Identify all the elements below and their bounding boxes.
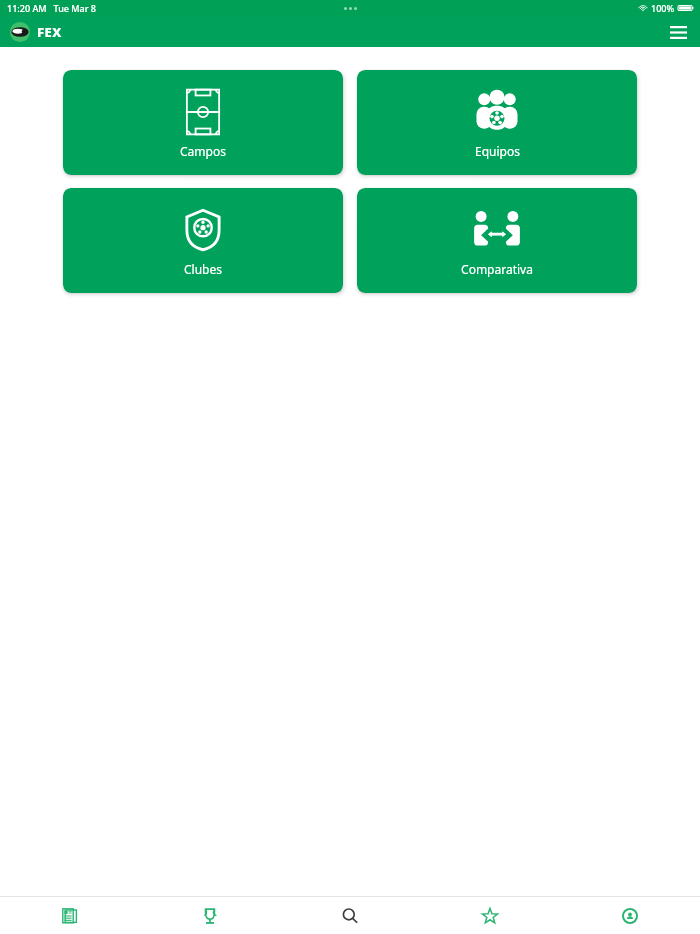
button[interactable]: Comparativa [357,188,637,293]
staticText: Clubes [184,261,222,277]
button[interactable]: Equipos [357,70,637,175]
button[interactable]: Clubes [63,188,343,293]
staticText: Campos [180,143,226,159]
staticText: 100% [651,2,675,14]
staticText: FEX [37,23,62,41]
staticText: 11:20 AM Tue Mar 8 [7,2,97,14]
button[interactable]: News [0,897,140,934]
button[interactable]: Campos [63,70,343,175]
button[interactable]: Favorites [420,897,560,934]
button[interactable]: Search [280,897,420,934]
staticText: Equipos [475,143,520,159]
button[interactable]: Menu [664,18,692,46]
button[interactable]: Account [560,897,700,934]
staticText: Comparativa [461,261,533,277]
button[interactable]: Competitions [140,897,280,934]
